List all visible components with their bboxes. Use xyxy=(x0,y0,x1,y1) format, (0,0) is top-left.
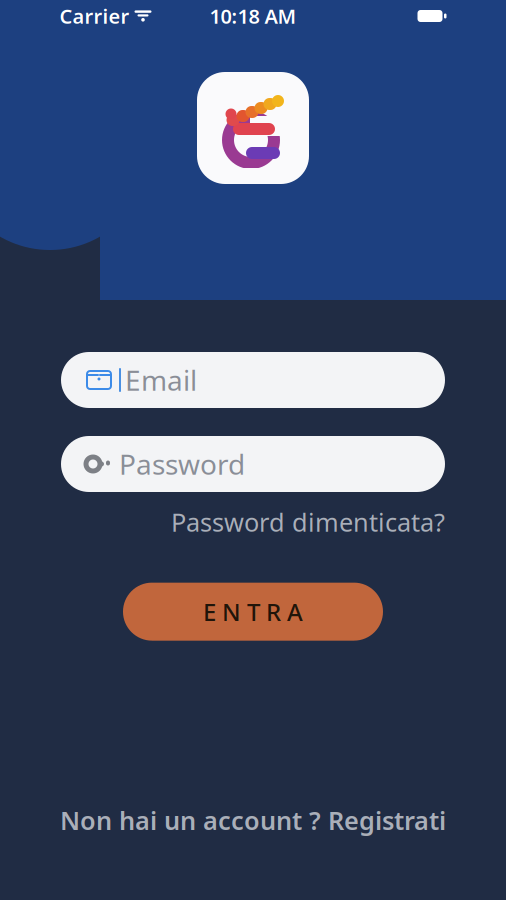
staticText: Non hai un account ? Registrati xyxy=(60,803,446,837)
button[interactable]: E N T R A xyxy=(123,583,383,641)
staticText: Password xyxy=(119,445,245,483)
button[interactable]: Email xyxy=(61,352,445,408)
staticText: Email xyxy=(125,361,197,399)
button[interactable]: Non hai un account ? Registrati xyxy=(50,797,456,843)
staticText: 10:18 AM xyxy=(209,3,296,29)
staticText: Carrier xyxy=(59,3,129,29)
staticText: E N T R A xyxy=(203,596,303,628)
button[interactable]: Password xyxy=(61,436,445,492)
staticText: Password dimenticata? xyxy=(171,505,445,539)
button[interactable]: Password dimenticata? xyxy=(171,501,445,543)
